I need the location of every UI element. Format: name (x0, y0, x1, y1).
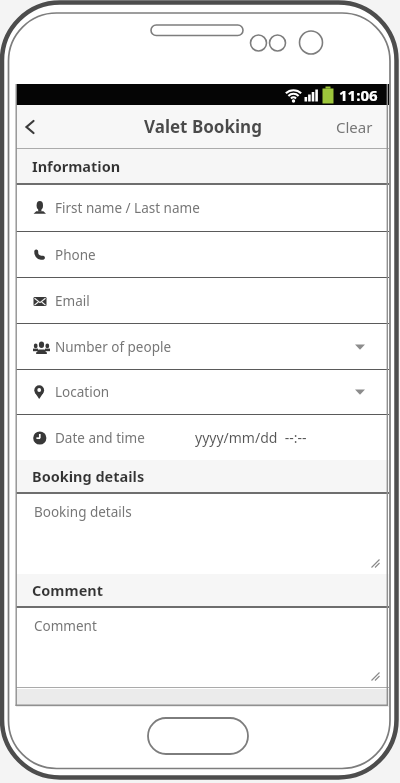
staticText: yyyy/mm/dd --:-- (195, 428, 307, 447)
button[interactable] (16, 106, 43, 148)
button[interactable]: Phone (16, 232, 389, 277)
button[interactable]: Number of people (16, 324, 389, 369)
staticText: 11:06 (339, 85, 378, 105)
button[interactable]: Booking details (16, 494, 389, 574)
button[interactable]: Comment (16, 608, 389, 687)
staticText: Booking details (32, 466, 145, 486)
staticText: Email (55, 292, 90, 310)
button[interactable]: Date and time (16, 415, 389, 460)
staticText: Comment (34, 617, 97, 635)
staticText: Information (32, 156, 121, 176)
button[interactable]: Email (16, 278, 389, 323)
staticText: Phone (55, 246, 96, 264)
button[interactable]: Clear (336, 117, 373, 137)
button[interactable]: Location (16, 370, 389, 414)
staticText: Comment (32, 580, 104, 600)
staticText: Location (55, 383, 110, 401)
staticText: First name / Last name (55, 199, 200, 217)
staticText: Clear (336, 117, 373, 137)
button[interactable]: First name / Last name (16, 185, 389, 231)
staticText: Booking details (34, 503, 132, 521)
staticText: Date and time (55, 429, 145, 447)
staticText: Valet Booking (144, 115, 262, 138)
staticText: Number of people (55, 338, 172, 356)
